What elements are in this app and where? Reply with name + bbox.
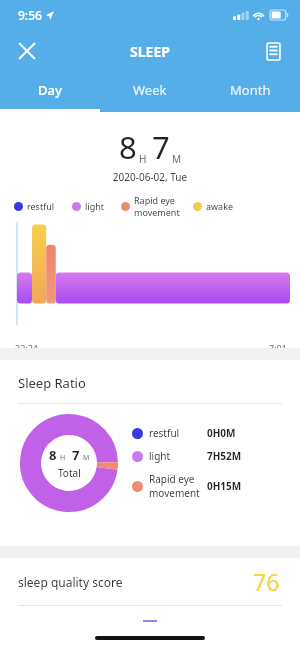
staticText: 7 (152, 126, 170, 168)
staticText: Rapid eye (134, 194, 175, 206)
button[interactable]: Week (100, 72, 200, 112)
staticText: Month (230, 81, 271, 99)
button[interactable]: Sleep report (254, 32, 292, 70)
staticText: restful (27, 200, 55, 212)
staticText: Total (58, 466, 81, 480)
button[interactable]: Day (0, 72, 100, 112)
staticText: 2020-06-02, Tue (0, 170, 300, 184)
staticText: 7 (72, 446, 80, 464)
staticText: 0H0M (207, 426, 236, 440)
button[interactable]: sleep quality score (0, 558, 300, 606)
staticText: SLEEP (130, 42, 170, 61)
staticText: M (83, 453, 90, 463)
staticText: H (139, 152, 147, 166)
staticText: light (149, 449, 171, 463)
staticText: 76 (253, 566, 280, 597)
button[interactable]: Month (200, 72, 300, 112)
staticText: 8 (119, 126, 137, 168)
staticText: restful (149, 426, 180, 440)
staticText: 7H52M (207, 449, 242, 463)
staticText: light (85, 200, 104, 212)
staticText: Day (38, 81, 62, 99)
staticText: movement (149, 486, 200, 500)
staticText: M (172, 152, 182, 166)
staticText: Rapid eye (149, 472, 195, 486)
button[interactable]: Close (8, 32, 46, 70)
staticText: awake (206, 200, 234, 212)
staticText: Week (133, 81, 167, 99)
staticText: 0H15M (207, 479, 242, 493)
staticText: Sleep Ratio (18, 374, 86, 392)
staticText: H (60, 453, 66, 463)
staticText: 7:01 (269, 342, 287, 348)
staticText: 8 (49, 446, 57, 464)
staticText: 22:34 (15, 342, 39, 348)
staticText: sleep quality score (18, 574, 123, 590)
staticText: movement (134, 206, 180, 218)
staticText: 9:56 (18, 7, 42, 23)
